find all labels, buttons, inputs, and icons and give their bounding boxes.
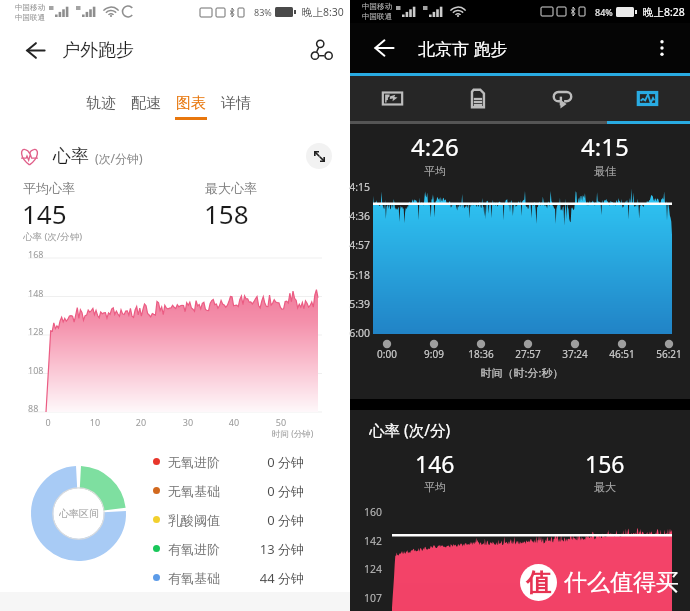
staticText: 北京市 跑步 xyxy=(418,37,508,60)
staticText: 中国联通 xyxy=(15,13,45,22)
staticText: 什么值得买 xyxy=(564,568,679,597)
button[interactable]: Charts xyxy=(605,76,690,121)
button[interactable]: Expand chart xyxy=(306,143,332,169)
staticText: 0:00 xyxy=(367,347,407,361)
button[interactable]: Details xyxy=(435,76,520,121)
staticText: 10 xyxy=(87,416,103,428)
staticText: 13 分钟 xyxy=(254,540,304,558)
staticText: 6:00 xyxy=(338,326,370,340)
staticText: 户外跑步 xyxy=(62,39,134,62)
button[interactable]: Back xyxy=(360,25,406,71)
staticText: 有氧基础 xyxy=(168,570,236,586)
staticText: 148 xyxy=(28,287,44,299)
staticText: 4:26 xyxy=(411,130,459,163)
button[interactable]: 无氧基础 xyxy=(153,476,304,505)
button[interactable]: 配速 xyxy=(130,94,162,120)
staticText: 乳酸阈值 xyxy=(168,512,236,528)
staticText: 4:57 xyxy=(338,238,370,252)
staticText: 56:21 xyxy=(649,347,689,361)
staticText: 145 xyxy=(22,196,67,231)
staticText: 0 分钟 xyxy=(254,453,304,471)
button[interactable]: More options xyxy=(642,28,682,68)
staticText: (次/分钟) xyxy=(95,150,143,166)
staticText: 时间（时:分:秒） xyxy=(442,365,602,380)
staticText: 44 分钟 xyxy=(254,569,304,587)
staticText: 配速 xyxy=(131,94,161,113)
staticText: 4:36 xyxy=(338,209,370,223)
staticText: 无氧基础 xyxy=(168,483,236,499)
staticText: 中国移动 xyxy=(362,2,392,11)
staticText: 中国移动 xyxy=(15,3,45,12)
staticText: 168 xyxy=(28,248,44,260)
staticText: 142 xyxy=(350,534,382,548)
staticText: 心率 xyxy=(53,145,89,168)
staticText: 156 xyxy=(585,448,625,479)
staticText: 0 xyxy=(40,416,56,428)
staticText: 108 xyxy=(28,364,44,376)
button[interactable]: Map xyxy=(350,76,435,121)
staticText: 146 xyxy=(415,448,455,479)
staticText: 128 xyxy=(28,325,44,337)
staticText: 中国联通 xyxy=(362,12,392,21)
staticText: 158 xyxy=(204,196,249,231)
staticText: 18:36 xyxy=(461,347,501,361)
staticText: 20 xyxy=(133,416,149,428)
button[interactable]: Share xyxy=(300,28,344,72)
staticText: 37:24 xyxy=(555,347,595,361)
staticText: 5:18 xyxy=(338,268,370,282)
staticText: 0 分钟 xyxy=(254,511,304,529)
staticText: 84% xyxy=(595,6,613,18)
staticText: 40 xyxy=(226,416,242,428)
staticText: 心率区间 xyxy=(59,507,99,520)
staticText: 107 xyxy=(350,591,382,605)
staticText: 平均 xyxy=(424,164,446,178)
staticText: 值 xyxy=(526,567,551,598)
staticText: 124 xyxy=(350,562,382,576)
staticText: 50 xyxy=(273,416,289,428)
staticText: 30 xyxy=(180,416,196,428)
staticText: 图表 xyxy=(176,94,206,113)
staticText: 9:09 xyxy=(414,347,454,361)
staticText: 详情 xyxy=(221,94,251,113)
staticText: 4:15 xyxy=(338,180,370,194)
staticText: 27:57 xyxy=(508,347,548,361)
staticText: 心率 (次/分钟) xyxy=(23,230,83,243)
staticText: 平均 xyxy=(424,480,446,494)
staticText: 最大 xyxy=(594,480,616,494)
button[interactable]: 有氧基础 xyxy=(153,563,304,592)
staticText: 无氧进阶 xyxy=(168,454,236,470)
staticText: 最大心率 xyxy=(205,180,257,196)
staticText: 时间 (分钟) xyxy=(272,428,314,440)
button[interactable]: 图表 xyxy=(175,94,207,120)
staticText: 160 xyxy=(350,505,382,519)
staticText: 心率 (次/分) xyxy=(369,419,451,440)
staticText: 83% xyxy=(254,6,272,18)
staticText: 平均心率 xyxy=(23,180,75,196)
button[interactable]: 轨迹 xyxy=(85,94,117,120)
button[interactable]: Back xyxy=(12,28,56,72)
button[interactable]: 有氧进阶 xyxy=(153,534,304,563)
button[interactable]: 乳酸阈值 xyxy=(153,505,304,534)
staticText: 4:15 xyxy=(581,130,629,163)
staticText: 46:51 xyxy=(602,347,642,361)
staticText: 有氧进阶 xyxy=(168,541,236,557)
button[interactable]: 详情 xyxy=(220,94,252,120)
staticText: 晚上8:28 xyxy=(643,5,685,19)
staticText: 最佳 xyxy=(594,164,616,178)
button[interactable]: 无氧进阶 xyxy=(153,447,304,476)
staticText: 轨迹 xyxy=(86,94,116,113)
staticText: 0 分钟 xyxy=(254,482,304,500)
staticText: 晚上8:30 xyxy=(302,5,344,19)
staticText: 5:39 xyxy=(338,297,370,311)
staticText: 88 xyxy=(28,402,39,414)
button[interactable]: Laps xyxy=(520,76,605,121)
